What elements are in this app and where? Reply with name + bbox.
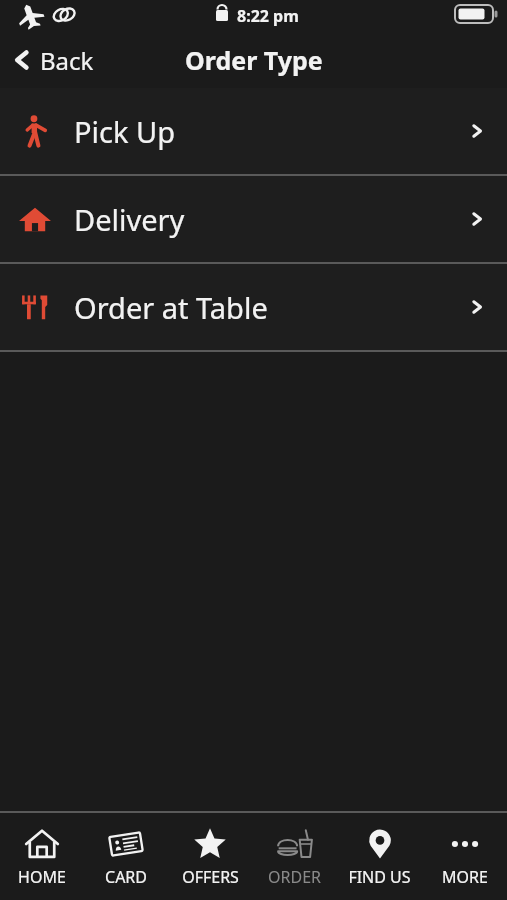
button[interactable]: ORDER (252, 813, 337, 900)
staticText: FIND US (348, 866, 411, 888)
button[interactable]: Delivery (0, 176, 507, 262)
button[interactable]: HOME (0, 813, 84, 900)
button[interactable]: MORE (422, 813, 507, 900)
staticText: Order Type (185, 43, 323, 77)
button[interactable]: Back (0, 32, 108, 88)
button[interactable]: OFFERS (168, 813, 252, 900)
staticText: Pick Up (74, 112, 176, 151)
staticText: OFFERS (182, 866, 239, 888)
staticText: ORDER (268, 866, 321, 888)
staticText: 8:22 pm (237, 5, 299, 27)
button[interactable]: Order at Table (0, 264, 507, 350)
staticText: Delivery (74, 200, 185, 239)
staticText: CARD (105, 866, 147, 888)
staticText: MORE (442, 866, 488, 888)
button[interactable]: CARD (84, 813, 168, 900)
staticText: Back (40, 44, 94, 77)
button[interactable]: Pick Up (0, 88, 507, 174)
staticText: Order at Table (74, 288, 268, 327)
staticText: HOME (18, 866, 66, 888)
button[interactable]: FIND US (337, 813, 422, 900)
